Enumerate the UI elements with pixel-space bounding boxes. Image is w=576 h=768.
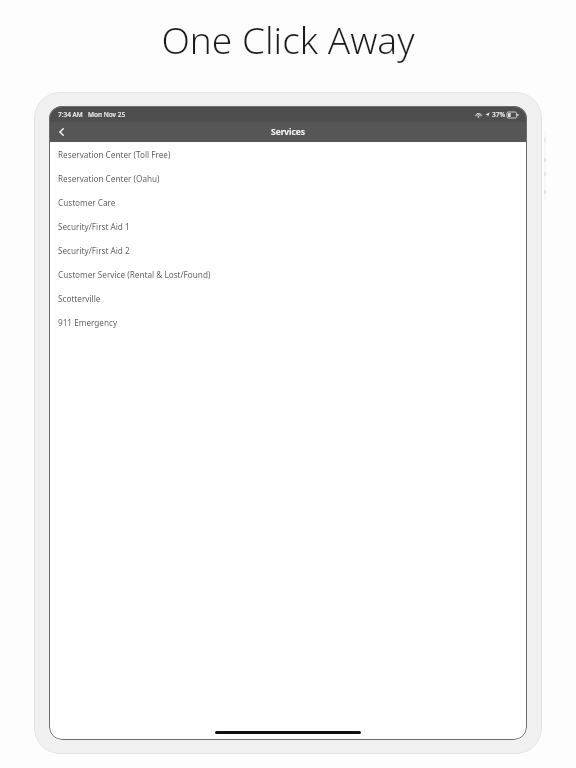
button[interactable]: Security/First Aid 2 <box>49 238 527 262</box>
button[interactable]: Reservation Center (Oahu) <box>49 166 527 190</box>
button[interactable]: Customer Care <box>49 190 527 214</box>
staticText: Scotterville <box>58 293 101 304</box>
button[interactable]: Security/First Aid 1 <box>49 214 527 238</box>
button[interactable]: Customer Service (Rental & Lost/Found) <box>49 262 527 286</box>
button[interactable]: Scotterville <box>49 286 527 310</box>
button[interactable]: Reservation Center (Toll Free) <box>49 142 527 166</box>
staticText: Reservation Center (Toll Free) <box>58 149 171 160</box>
staticText: Security/First Aid 1 <box>58 221 130 232</box>
staticText: Mon Nov 25 <box>88 110 126 119</box>
staticText: Services <box>271 126 305 138</box>
staticText: 7:34 AM <box>58 110 83 119</box>
button[interactable]: Back <box>49 122 75 142</box>
staticText: 911 Emergency <box>58 317 118 328</box>
staticText: Customer Service (Rental & Lost/Found) <box>58 269 211 280</box>
staticText: Security/First Aid 2 <box>58 245 130 256</box>
button[interactable]: 911 Emergency <box>49 310 527 334</box>
staticText: 37% <box>492 110 505 119</box>
staticText: Reservation Center (Oahu) <box>58 173 160 184</box>
staticText: One Click Away <box>161 14 415 64</box>
staticText: Customer Care <box>58 197 116 208</box>
